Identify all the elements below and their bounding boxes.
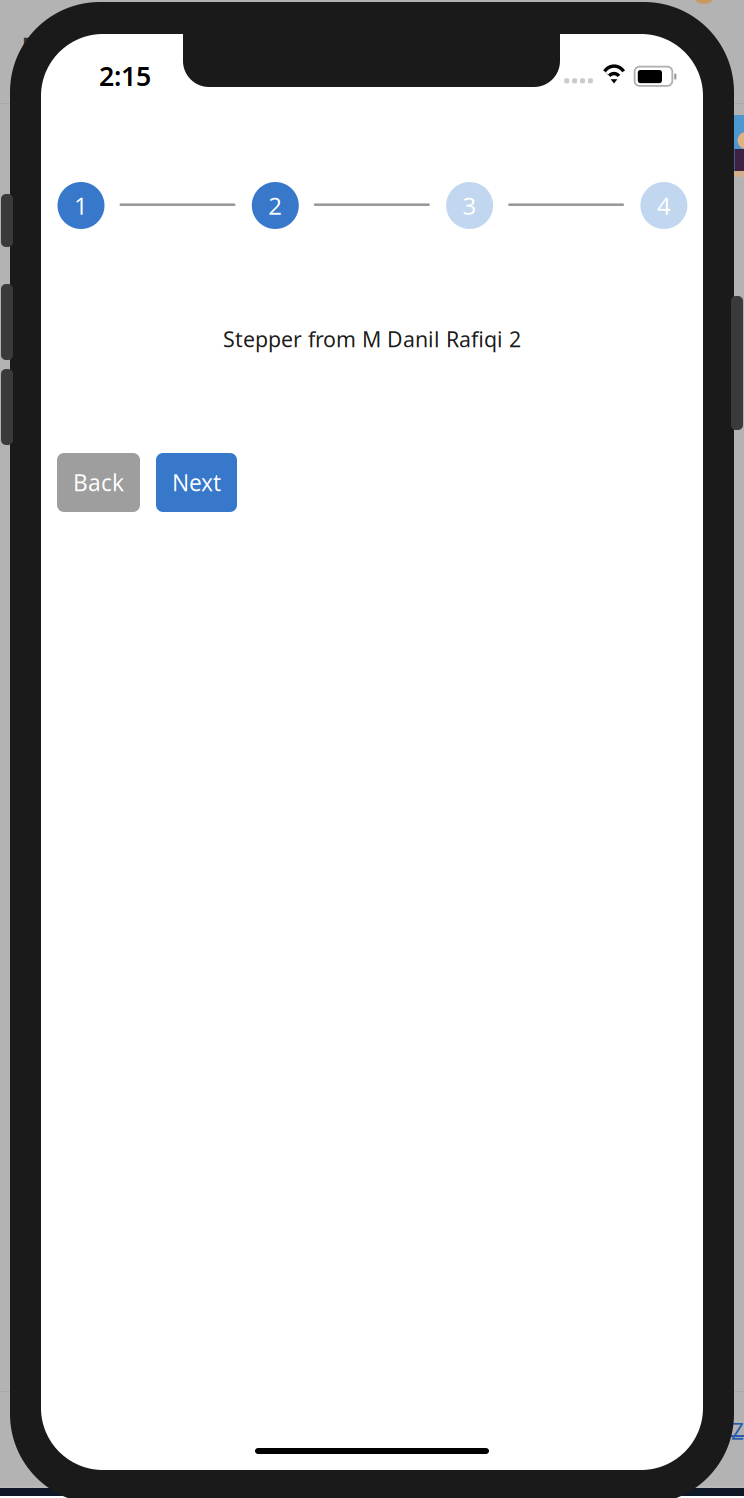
staticText: 1 xyxy=(74,190,88,221)
staticText: Next xyxy=(172,467,221,497)
staticText: 3 xyxy=(463,190,477,221)
staticText: 2:15 xyxy=(99,58,151,93)
staticText: Stepper from M Danil Rafiqi 2 xyxy=(223,325,521,353)
staticText: R xyxy=(21,28,39,67)
button[interactable]: 1 xyxy=(57,182,104,229)
button[interactable]: Back xyxy=(57,453,140,512)
button[interactable]: Next xyxy=(156,453,237,512)
staticText: Zo xyxy=(731,1416,744,1446)
staticText: Back xyxy=(73,467,124,497)
button[interactable]: 3 xyxy=(446,182,493,229)
button[interactable]: 4 xyxy=(640,182,687,229)
button[interactable]: 2 xyxy=(252,182,299,229)
staticText: 4 xyxy=(657,190,671,221)
staticText: 2 xyxy=(268,190,282,221)
